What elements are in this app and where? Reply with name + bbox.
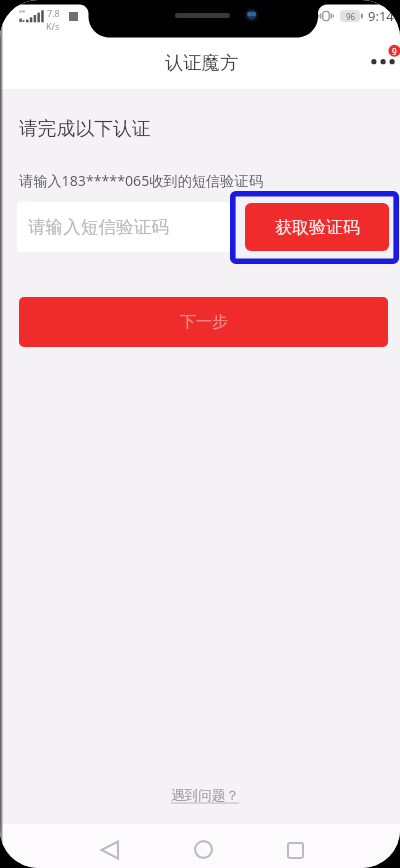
- staticText: 9: [392, 46, 397, 57]
- button[interactable]: 下一步: [19, 297, 388, 347]
- button[interactable]: Recent apps: [271, 826, 319, 868]
- button[interactable]: 获取验证码: [245, 203, 389, 251]
- staticText: 遇到问题？: [171, 787, 239, 804]
- staticText: 请输入183*****065收到的短信验证码: [19, 171, 263, 190]
- button[interactable]: More options: [360, 38, 400, 89]
- button[interactable]: 遇到问题？: [167, 784, 243, 807]
- staticText: 下一步: [180, 312, 228, 332]
- staticText: 请输入短信验证码: [28, 216, 169, 238]
- button[interactable]: Back: [86, 826, 134, 868]
- staticText: 请完成以下认证: [19, 117, 151, 141]
- staticText: 96: [346, 11, 356, 22]
- staticText: 9:14: [368, 7, 394, 25]
- button[interactable]: Home: [179, 825, 227, 868]
- staticText: K/s: [46, 20, 60, 32]
- button[interactable]: 请输入短信验证码: [17, 202, 230, 252]
- staticText: 获取验证码: [275, 217, 360, 238]
- staticText: 认证魔方: [165, 51, 239, 74]
- staticText: 7.8: [47, 7, 60, 19]
